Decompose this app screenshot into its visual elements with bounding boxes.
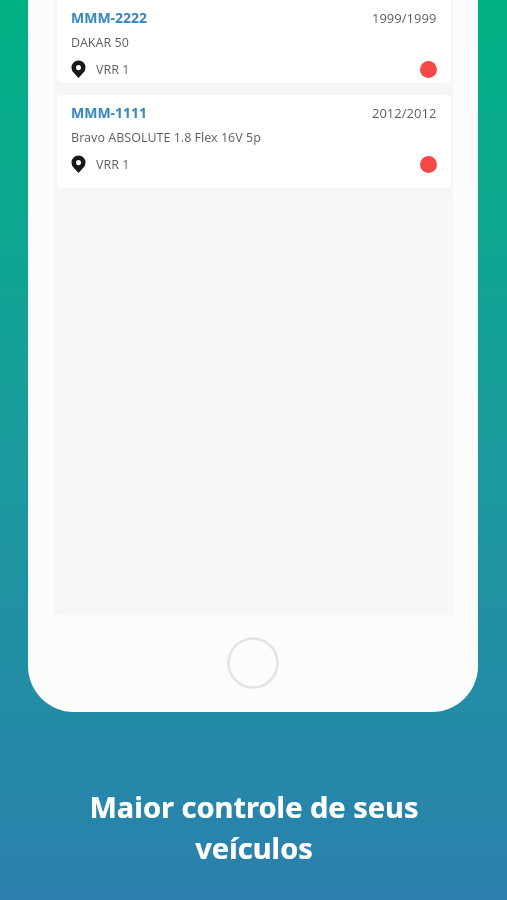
staticText: VRR 1	[96, 156, 130, 173]
staticText: 1999/1999	[372, 9, 437, 27]
staticText: DAKAR 50	[71, 34, 129, 51]
staticText: Bravo ABSOLUTE 1.8 Flex 16V 5p	[71, 129, 261, 146]
staticText: 2012/2012	[372, 104, 437, 122]
staticText: veículos	[195, 828, 313, 867]
button[interactable]: MMM-1111	[57, 95, 451, 188]
button[interactable]: Home	[227, 637, 279, 689]
button[interactable]: MMM-2222	[57, 0, 451, 83]
staticText: MMM-2222	[71, 8, 148, 27]
staticText: VRR 1	[96, 61, 130, 78]
staticText: MMM-1111	[71, 103, 148, 122]
staticText: Maior controle de seus	[89, 787, 419, 826]
